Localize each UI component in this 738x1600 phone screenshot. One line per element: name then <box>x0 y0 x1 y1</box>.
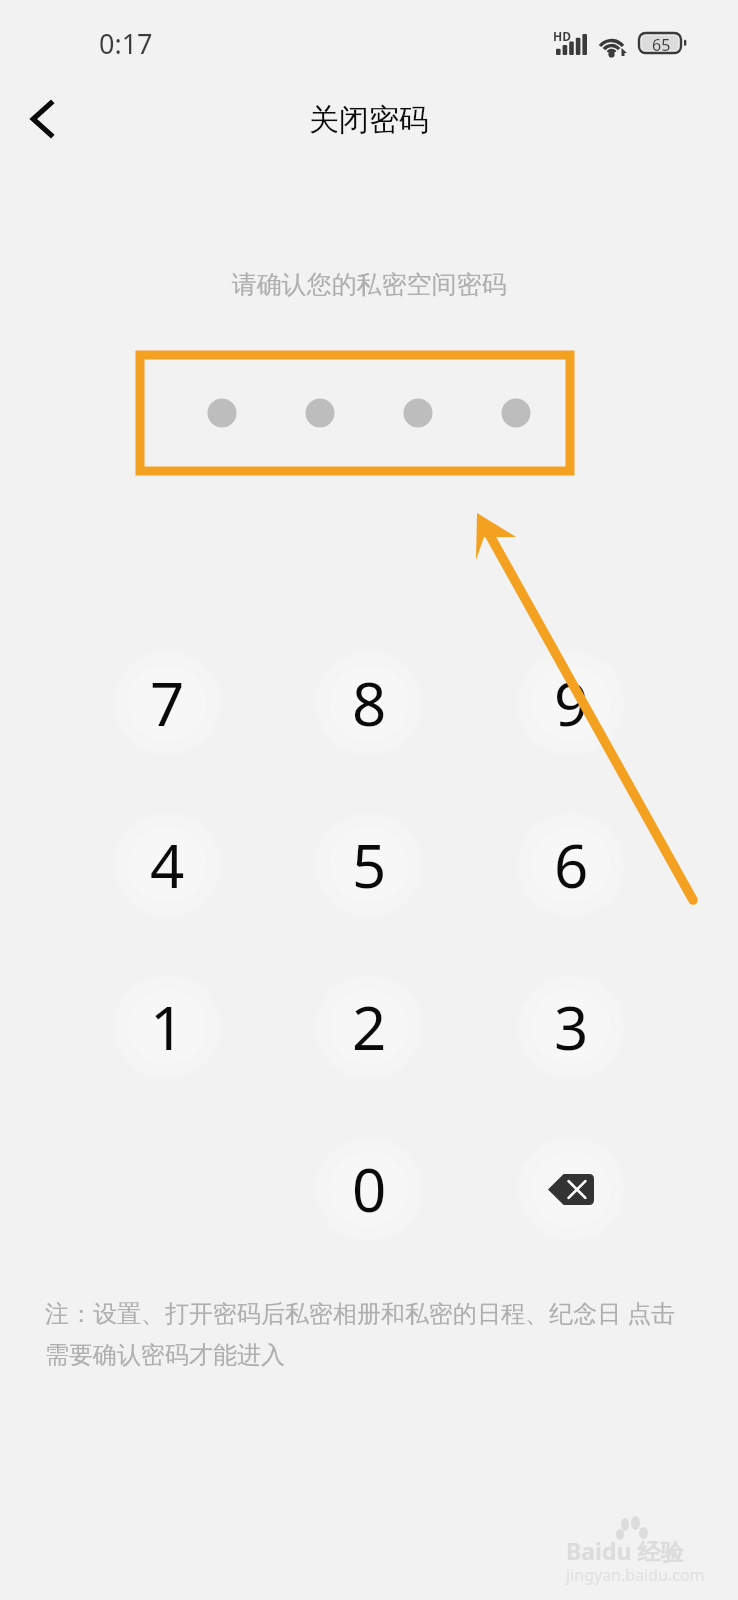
button[interactable]: Back <box>8 83 80 155</box>
button[interactable]: 1 <box>106 969 228 1085</box>
staticText: 4 <box>150 824 185 906</box>
staticText: 6 <box>554 824 589 906</box>
button[interactable]: 7 <box>106 645 228 761</box>
button[interactable]: 2 <box>308 969 430 1085</box>
staticText: 关闭密码 <box>0 101 738 139</box>
staticText: 0 <box>352 1148 387 1230</box>
staticText: 注：设置、打开密码后私密相册和私密的日程、纪念日 点击 需要确认密码才能进入 <box>45 1296 725 1370</box>
staticText: jingyan.baidu.com <box>566 1564 705 1586</box>
staticText: 2 <box>352 986 387 1068</box>
button[interactable]: Backspace <box>510 1131 632 1247</box>
button[interactable]: Password field <box>136 351 574 475</box>
button[interactable]: 5 <box>308 807 430 923</box>
staticText: 请确认您的私密空间密码 <box>0 269 738 300</box>
staticText: 8 <box>352 662 387 744</box>
button[interactable]: 8 <box>308 645 430 761</box>
staticText: 5 <box>352 824 387 906</box>
staticText: 1 <box>150 986 185 1068</box>
button[interactable]: 3 <box>510 969 632 1085</box>
button[interactable]: 9 <box>510 645 632 761</box>
button[interactable]: 6 <box>510 807 632 923</box>
staticText: 7 <box>150 662 185 744</box>
staticText: 3 <box>554 986 589 1068</box>
button[interactable]: 0 <box>308 1131 430 1247</box>
staticText: HD <box>553 28 571 44</box>
staticText: Baidu 经验 <box>566 1535 684 1566</box>
staticText: 9 <box>554 662 589 744</box>
staticText: 0:17 <box>99 25 153 62</box>
staticText: 65 <box>652 34 671 56</box>
button[interactable]: 4 <box>106 807 228 923</box>
